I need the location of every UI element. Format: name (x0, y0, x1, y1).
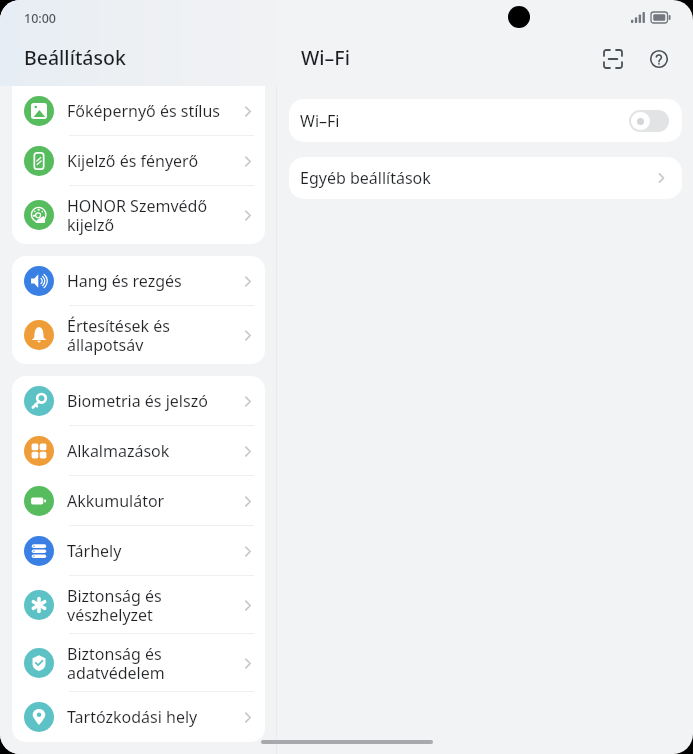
button[interactable]: Értesítések és állapotsáv (12, 306, 265, 364)
staticText: Főképernyő és stílus (67, 100, 233, 122)
button[interactable]: Kijelző és fényerő (12, 136, 265, 186)
staticText: Biometria és jelszó (67, 390, 233, 412)
button[interactable]: Wi-Fi switch (629, 110, 669, 132)
button[interactable]: Wi–Fi (289, 99, 682, 142)
button[interactable]: Biometria és jelszó (12, 376, 265, 426)
staticText: Értesítések és állapotsáv (67, 315, 233, 356)
staticText: Tárhely (67, 540, 233, 562)
button[interactable]: Egyéb beállítások (289, 157, 682, 199)
button[interactable]: Biztonság és vészhelyzet (12, 576, 265, 634)
button[interactable]: Tartózkodási hely (12, 692, 265, 742)
button[interactable]: Help (642, 42, 676, 76)
staticText: Biztonság és adatvédelem (67, 643, 233, 684)
button[interactable]: Akkumulátor (12, 476, 265, 526)
staticText: Beállítások (24, 44, 126, 71)
staticText: Biztonság és vészhelyzet (67, 585, 233, 626)
button[interactable]: Tárhely (12, 526, 265, 576)
button[interactable]: Scan QR code (596, 42, 630, 76)
staticText: Wi–Fi (301, 44, 350, 71)
button[interactable]: Biztonság és adatvédelem (12, 634, 265, 692)
staticText: Akkumulátor (67, 490, 233, 512)
staticText: Wi–Fi (300, 110, 340, 132)
staticText: HONOR Szemvédő kijelző (67, 195, 233, 236)
staticText: Tartózkodási hely (67, 706, 233, 728)
button[interactable]: Hang és rezgés (12, 256, 265, 306)
staticText: 10:00 (24, 10, 57, 27)
button[interactable]: HONOR Szemvédő kijelző (12, 186, 265, 244)
staticText: Hang és rezgés (67, 270, 233, 292)
button[interactable]: Alkalmazások (12, 426, 265, 476)
staticText: Alkalmazások (67, 440, 233, 462)
staticText: Kijelző és fényerő (67, 150, 233, 172)
staticText: Egyéb beállítások (300, 167, 431, 189)
button[interactable]: Főképernyő és stílus (12, 86, 265, 136)
